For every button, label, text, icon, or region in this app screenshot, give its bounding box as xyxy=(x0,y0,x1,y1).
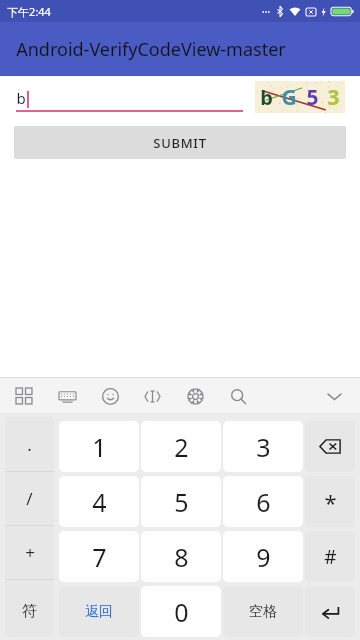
button[interactable]: Enter xyxy=(305,586,355,637)
button[interactable]: 1 xyxy=(59,421,139,472)
staticText: b xyxy=(16,88,26,108)
staticText: 6 xyxy=(256,485,271,519)
button[interactable]: 符 xyxy=(5,586,54,637)
staticText: 8 xyxy=(174,540,189,574)
staticText: SUBMIT xyxy=(153,134,207,152)
staticText: 7 xyxy=(92,540,107,574)
button[interactable]: 7 xyxy=(59,531,139,582)
button[interactable]: 2 xyxy=(141,421,221,472)
staticText: 返回 xyxy=(85,603,113,621)
button[interactable]: 6 xyxy=(223,476,303,527)
staticText: G xyxy=(281,83,297,112)
staticText: 1 xyxy=(92,430,107,464)
button[interactable]: 空格 xyxy=(223,586,303,637)
button[interactable]: 0 xyxy=(141,586,221,637)
staticText: * xyxy=(324,487,337,517)
staticText: − xyxy=(25,595,35,618)
button[interactable]: Settings xyxy=(179,380,211,412)
button[interactable]: Keyboard xyxy=(51,380,83,412)
button[interactable]: Cursor xyxy=(136,380,168,412)
staticText: b xyxy=(260,84,273,111)
button[interactable]: 8 xyxy=(141,531,221,582)
staticText: 下午2:44 xyxy=(7,4,51,19)
staticText: Android-VerifyCodeView-master xyxy=(16,37,286,62)
staticText: 0 xyxy=(174,595,189,629)
button[interactable]: 9 xyxy=(223,531,303,582)
button[interactable]: 4 xyxy=(59,476,139,527)
staticText: # xyxy=(324,544,337,570)
staticText: / xyxy=(26,487,33,510)
staticText: 4 xyxy=(92,485,107,519)
button[interactable]: # xyxy=(305,531,355,582)
staticText: 2 xyxy=(174,430,189,464)
staticText: 空格 xyxy=(249,603,277,621)
staticText: . xyxy=(27,433,32,456)
button[interactable]: Emoji xyxy=(94,380,126,412)
button[interactable]: 返回 xyxy=(59,586,139,637)
staticText: 5 xyxy=(174,485,189,519)
staticText: 3 xyxy=(256,430,271,464)
staticText: 符 xyxy=(22,602,37,621)
button[interactable]: Hide keyboard xyxy=(317,379,351,413)
button[interactable]: * xyxy=(305,476,355,527)
button[interactable]: Refresh verification code xyxy=(255,81,345,113)
staticText: 3 xyxy=(327,83,340,112)
button[interactable]: 5 xyxy=(141,476,221,527)
button[interactable]: Search xyxy=(222,380,254,412)
button[interactable]: 3 xyxy=(223,421,303,472)
staticText: 9 xyxy=(256,540,271,574)
button[interactable]: Backspace xyxy=(305,421,355,472)
staticText: + xyxy=(25,541,35,564)
staticText: 5 xyxy=(306,83,319,112)
button[interactable]: . xyxy=(5,417,54,633)
button[interactable]: Menu xyxy=(8,380,40,412)
button[interactable]: SUBMIT xyxy=(14,126,346,159)
